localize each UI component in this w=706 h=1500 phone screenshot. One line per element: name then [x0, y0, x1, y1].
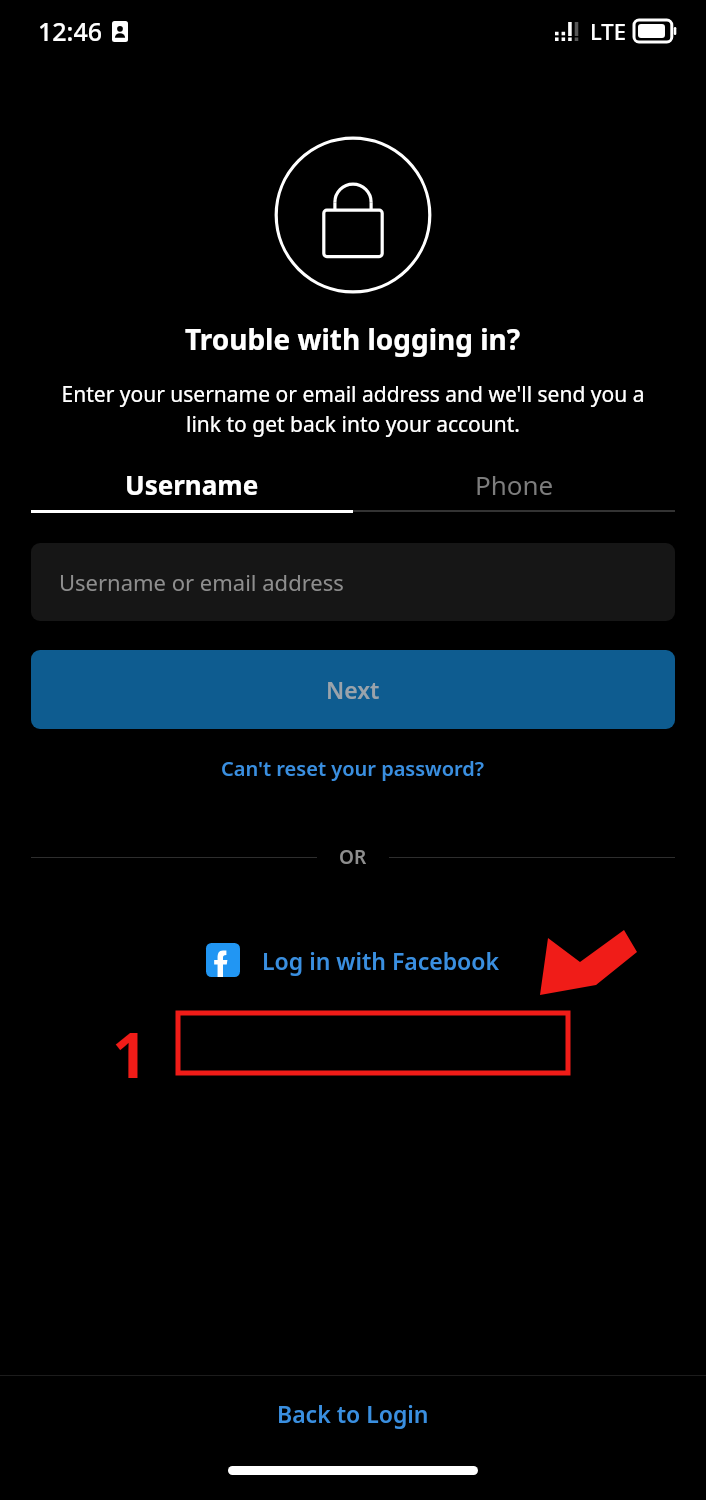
- staticText: Can't reset your password?: [221, 755, 485, 782]
- staticText: Username or email address: [59, 567, 344, 597]
- staticText: Phone: [475, 467, 554, 502]
- staticText: Trouble with logging in?: [185, 320, 521, 358]
- staticText: Enter your username or email address and…: [56, 380, 650, 438]
- staticText: 12:46: [38, 14, 103, 48]
- button[interactable]: Log in with Facebook: [192, 933, 514, 987]
- staticText: 1: [112, 1012, 148, 1096]
- staticText: Next: [326, 674, 380, 705]
- staticText: LTE: [590, 16, 626, 46]
- staticText: Username: [125, 467, 259, 502]
- button[interactable]: Username or email address: [31, 543, 675, 621]
- staticText: Back to Login: [277, 1398, 429, 1429]
- button[interactable]: Username: [31, 458, 353, 513]
- staticText: Log in with Facebook: [262, 945, 500, 976]
- button[interactable]: Next: [31, 650, 675, 729]
- button[interactable]: Can't reset your password?: [0, 755, 706, 782]
- staticText: OR: [339, 844, 367, 870]
- button[interactable]: Phone: [353, 458, 675, 512]
- button[interactable]: Back to Login: [0, 1376, 706, 1450]
